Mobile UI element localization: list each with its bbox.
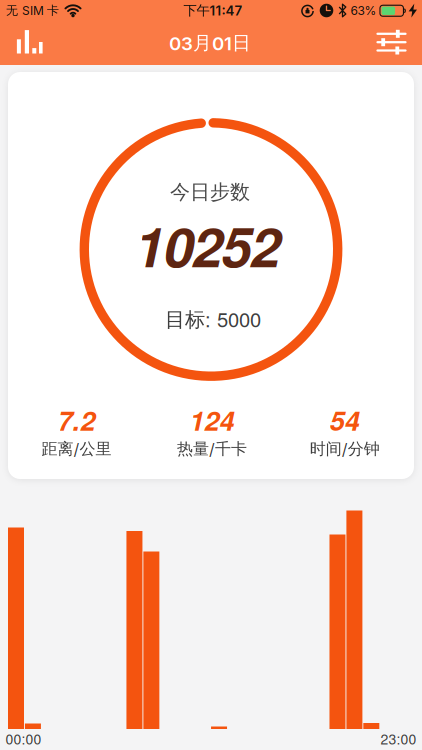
button[interactable]: 设置 (369, 20, 413, 64)
staticText: 7.2 (57, 400, 95, 439)
staticText: 今日步数 (170, 180, 250, 204)
staticText: 124 (189, 400, 234, 439)
staticText: 54 (330, 400, 360, 439)
button[interactable]: 历史统计 (8, 20, 52, 64)
staticText: 热量/千卡 (177, 439, 247, 459)
staticText: 无 SIM 卡 (6, 3, 59, 18)
staticText: 目标: 5000 (165, 304, 261, 333)
staticText: 03月01日 (169, 31, 251, 54)
staticText: 下午11:47 (183, 2, 242, 19)
staticText: 时间/分钟 (310, 439, 380, 459)
staticText: 距离/公里 (41, 439, 111, 459)
staticText: 10252 (134, 206, 280, 284)
staticText: 63% (350, 4, 376, 18)
staticText: 23:00 (380, 728, 416, 748)
staticText: 00:00 (5, 728, 41, 748)
